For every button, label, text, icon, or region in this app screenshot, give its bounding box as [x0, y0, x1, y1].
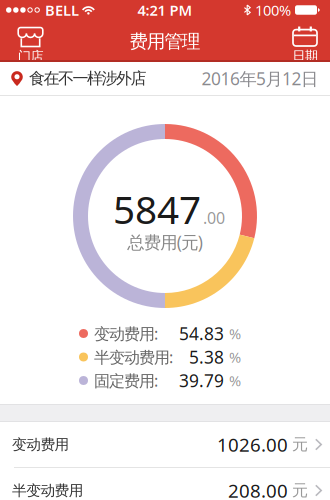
staticText: 2016年5月12日 — [201, 67, 318, 90]
staticText: 100% — [255, 0, 291, 20]
staticText: 54.83 — [179, 322, 224, 345]
staticText: 5.38 — [189, 345, 224, 368]
staticText: 变动费用: — [94, 323, 158, 344]
staticText: 5847 — [113, 183, 201, 235]
staticText: 半变动费用: — [94, 346, 173, 368]
staticText: % — [229, 371, 241, 390]
button[interactable]: 2016年5月12日 — [201, 67, 318, 90]
staticText: 元 — [292, 435, 308, 454]
staticText: 总费用(元) — [127, 230, 203, 253]
staticText: 变动费用 — [12, 435, 70, 453]
staticText: % — [229, 324, 241, 343]
staticText: 39.79 — [179, 369, 224, 392]
button[interactable]: 半变动费用 — [0, 468, 330, 500]
staticText: 208.00 — [228, 478, 288, 500]
staticText: 半变动费用 — [12, 481, 84, 499]
button[interactable]: 日期 — [292, 26, 318, 64]
button[interactable]: 变动费用 — [0, 422, 330, 467]
staticText: 食在不一样涉外店 — [29, 69, 146, 88]
staticText: 4:21 PM — [137, 0, 192, 20]
staticText: 固定费用: — [94, 370, 158, 391]
staticText: .00 — [203, 207, 225, 228]
staticText: % — [229, 347, 241, 367]
staticText: 门店 — [18, 48, 43, 65]
staticText: 日期 — [292, 48, 318, 64]
button[interactable]: 门店 — [17, 25, 44, 65]
button[interactable]: 食在不一样涉外店 — [11, 69, 146, 88]
staticText: 1026.00 — [217, 432, 288, 457]
staticText: BELL — [45, 0, 79, 20]
staticText: 元 — [292, 481, 308, 500]
staticText: 费用管理 — [129, 30, 201, 53]
